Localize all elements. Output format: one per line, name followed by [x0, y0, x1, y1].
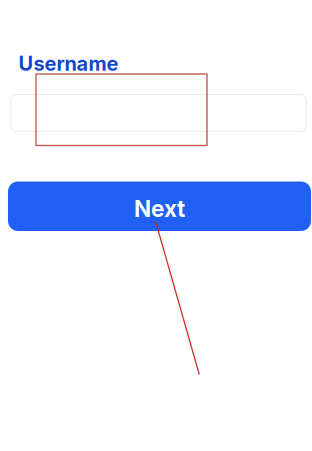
button[interactable]: Username text field: [8, 94, 306, 131]
staticText: Next: [134, 195, 185, 222]
button[interactable]: Next: [8, 181, 311, 231]
staticText: Username: [18, 51, 118, 76]
